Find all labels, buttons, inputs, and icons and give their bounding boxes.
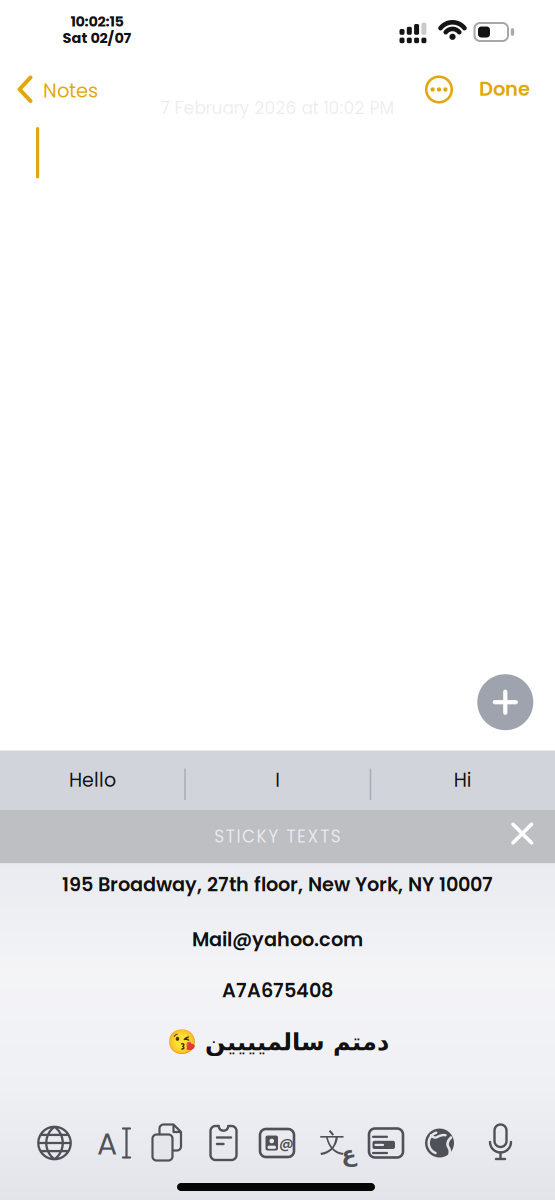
staticText: Hi	[454, 767, 472, 793]
staticText: 7 February 2026 at 10:02 PM	[160, 96, 394, 120]
button[interactable]: Web	[416, 1120, 462, 1166]
staticText: Sat 02/07	[62, 28, 131, 48]
button[interactable]: Done	[440, 69, 530, 109]
button[interactable]: Contact info	[254, 1120, 300, 1166]
staticText: دمتم سالميييين 😘	[166, 1028, 388, 1056]
staticText: Mail@yahoo.com	[192, 926, 363, 953]
button[interactable]: Close	[504, 815, 540, 852]
staticText: ع	[341, 1142, 356, 1167]
button[interactable]: Notes	[200, 1120, 246, 1166]
staticText: A7A675408	[222, 977, 333, 1004]
staticText: @	[279, 1133, 294, 1153]
button[interactable]: Dictation	[477, 1120, 523, 1166]
button[interactable]: 195 Broadway, 27th floor, New York, NY 1…	[0, 864, 555, 904]
button[interactable]: Hello	[0, 750, 185, 809]
button[interactable]: Snippets	[363, 1120, 409, 1166]
staticText: A	[97, 1123, 117, 1165]
staticText: 195 Broadway, 27th floor, New York, NY 1…	[62, 871, 493, 898]
button[interactable]: A7A675408	[0, 970, 555, 1010]
button[interactable]: I	[185, 750, 370, 809]
button[interactable]: Back to Notes	[12, 66, 142, 113]
staticText: I	[275, 767, 280, 793]
button[interactable]: Next keyboard	[31, 1120, 77, 1166]
button[interactable]: Copy	[144, 1120, 190, 1166]
button[interactable]: Translate	[308, 1120, 354, 1166]
staticText: Hello	[69, 767, 116, 793]
staticText: STICKY TEXTS	[214, 825, 341, 848]
button[interactable]: More	[414, 64, 464, 114]
staticText: 文	[319, 1127, 345, 1159]
button[interactable]: New note	[477, 674, 533, 730]
button[interactable]: Hi	[370, 750, 555, 809]
staticText: Notes	[43, 77, 98, 104]
staticText: Done	[479, 75, 530, 103]
button[interactable]: دمتم سالميييين 😘	[0, 1020, 555, 1064]
button[interactable]: Mail@yahoo.com	[0, 919, 555, 959]
staticText: 10:02:15	[70, 11, 123, 32]
button[interactable]: Text tools	[96, 1120, 142, 1166]
